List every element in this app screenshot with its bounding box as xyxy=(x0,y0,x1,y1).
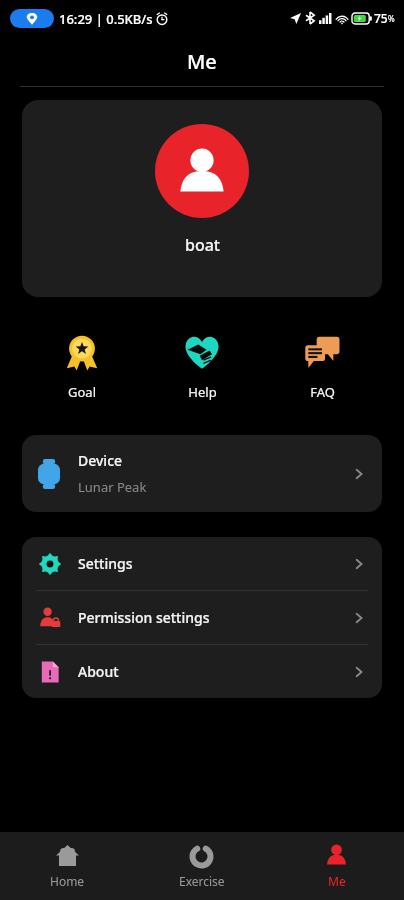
button[interactable]: Help xyxy=(142,329,262,405)
staticText: Permission settings xyxy=(78,608,210,627)
button[interactable]: Exercise xyxy=(134,832,269,900)
button[interactable]: boat xyxy=(22,100,382,297)
staticText: Device xyxy=(78,451,123,470)
staticText: Home xyxy=(50,873,85,889)
staticText: 16:29 | 0.5KB/s xyxy=(59,10,153,28)
staticText: Settings xyxy=(78,554,133,573)
staticText: Me xyxy=(187,48,217,75)
staticText: About xyxy=(78,662,119,681)
button[interactable]: Home xyxy=(0,832,134,900)
button[interactable]: Device xyxy=(22,435,382,512)
staticText: FAQ xyxy=(310,383,335,401)
staticText: Exercise xyxy=(179,873,225,889)
staticText: Lunar Peak xyxy=(78,478,147,496)
button[interactable]: Settings xyxy=(22,537,382,590)
button[interactable]: FAQ xyxy=(262,329,382,405)
staticText: % xyxy=(388,13,395,24)
staticText: Goal xyxy=(68,383,96,401)
staticText: 75 xyxy=(374,10,388,26)
button[interactable]: Permission settings xyxy=(22,591,382,644)
staticText: Me xyxy=(328,873,346,889)
staticText: boat xyxy=(185,234,220,256)
button[interactable]: About xyxy=(22,645,382,698)
staticText: Help xyxy=(188,383,217,401)
button[interactable]: Me xyxy=(269,832,404,900)
button[interactable]: Goal xyxy=(22,329,142,405)
